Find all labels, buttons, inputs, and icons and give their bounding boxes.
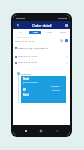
staticText: 2024-04-18 09:07 bbox=[18, 61, 38, 64]
staticText: order information bbox=[15, 36, 32, 39]
button[interactable]: Sent bbox=[43, 31, 55, 34]
staticText: All bbox=[19, 31, 22, 34]
button[interactable]: All bbox=[14, 31, 27, 34]
staticText: Courier bbox=[52, 89, 60, 92]
button[interactable]: Recent apps bbox=[23, 128, 28, 133]
button[interactable]: Done bbox=[57, 31, 69, 34]
staticText: Order detail bbox=[32, 23, 52, 28]
button[interactable]: Menu bbox=[62, 21, 70, 29]
staticText: Order No. JD 4419 2208 31 bbox=[18, 46, 48, 49]
staticText: Delivery bbox=[51, 85, 60, 88]
button[interactable]: Share bbox=[65, 39, 68, 42]
button[interactable]: Back bbox=[54, 128, 59, 133]
staticText: SF bbox=[23, 88, 26, 92]
button[interactable]: Home bbox=[38, 128, 43, 133]
button[interactable]: Paid bbox=[29, 31, 41, 34]
staticText: Shipped bbox=[21, 72, 31, 75]
button[interactable]: Search bbox=[60, 39, 63, 42]
staticText: 2024-04-18 10:24 bbox=[18, 55, 38, 58]
staticText: Paid bbox=[23, 93, 29, 97]
button[interactable]: Back bbox=[14, 21, 22, 29]
staticText: 2024-04-18 14:22 bbox=[15, 39, 35, 42]
staticText: Pack bbox=[23, 77, 30, 81]
staticText: Sent bbox=[47, 31, 52, 34]
button[interactable]: Pack bbox=[21, 76, 66, 103]
staticText: JDVA0012345678 bbox=[23, 81, 38, 84]
staticText: Done bbox=[60, 31, 66, 34]
staticText: Paid bbox=[33, 31, 38, 34]
